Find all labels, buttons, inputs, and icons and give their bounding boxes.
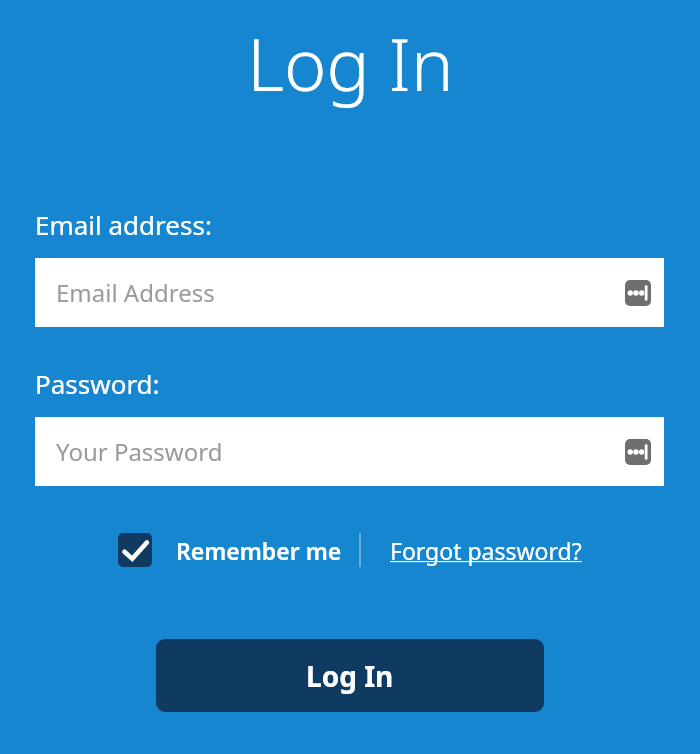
staticText: Password: (35, 366, 160, 401)
button[interactable]: Log In (156, 639, 544, 712)
staticText: Log In (247, 14, 454, 112)
staticText: Email address: (35, 207, 212, 242)
staticText: Remember me (176, 535, 342, 566)
button[interactable] (118, 533, 152, 567)
staticText: Your Password (56, 435, 223, 468)
button[interactable]: Forgot password? (390, 535, 582, 566)
staticText: Email Address (56, 276, 215, 309)
staticText: Log In (306, 657, 394, 695)
button[interactable]: Email Address (35, 258, 664, 327)
button[interactable]: Your Password (35, 417, 664, 486)
